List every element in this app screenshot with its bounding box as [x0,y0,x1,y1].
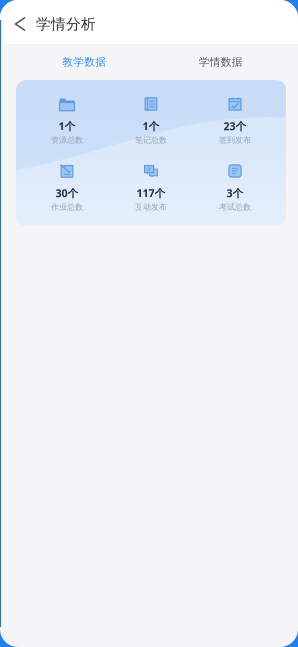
staticText: 学情数据 [199,55,243,68]
button[interactable]: 23个 [193,96,277,145]
staticText: 作业总数 [51,202,83,212]
button[interactable]: 教学数据 [16,44,152,80]
staticText: 教学数据 [62,55,106,68]
staticText: 资源总数 [51,135,83,145]
staticText: 签到发布 [219,135,251,145]
staticText: 1个 [142,119,159,133]
staticText: 互动发布 [135,202,167,212]
button[interactable]: 117个 [109,163,193,212]
button[interactable]: 3个 [193,163,277,212]
button[interactable]: 1个 [109,96,193,145]
staticText: 考试总数 [219,202,251,212]
button[interactable]: 1个 [25,96,109,145]
button[interactable]: 30个 [25,163,109,212]
staticText: 23个 [223,119,246,133]
staticText: 学情分析 [36,15,96,33]
staticText: 1个 [58,119,75,133]
button[interactable]: Back [0,7,36,40]
staticText: 3个 [226,186,243,200]
staticText: 117个 [136,186,165,200]
staticText: 笔记总数 [135,135,167,145]
staticText: 30个 [55,186,78,200]
button[interactable]: 学情数据 [152,44,289,80]
